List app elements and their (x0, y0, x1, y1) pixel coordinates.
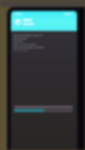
staticText: Copying data... (13, 48, 30, 51)
button[interactable] (14, 109, 73, 112)
button[interactable]: Android recovery icon (15, 19, 77, 25)
other: Android recovery icon (15, 19, 21, 25)
staticText: Applying update: step 2/3... (13, 33, 44, 36)
staticText: Updating partition: Modem (13, 45, 44, 48)
staticText: Host: 127.0.0.1 Build (13, 42, 36, 45)
